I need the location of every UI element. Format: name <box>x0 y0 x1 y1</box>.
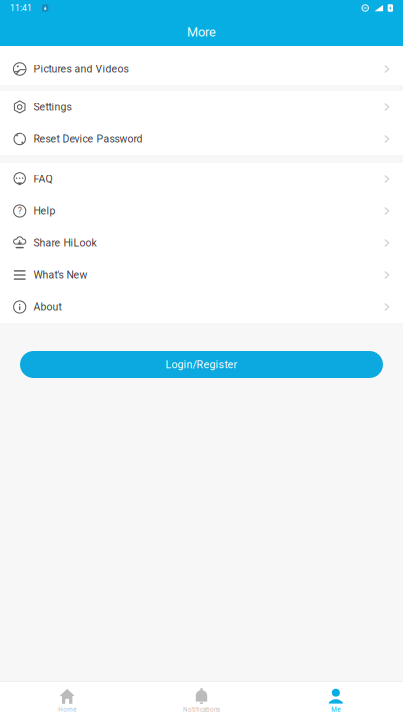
button[interactable]: Login/Register <box>20 351 383 378</box>
button[interactable]: Reset Device Password <box>0 123 403 155</box>
staticText: ? <box>18 206 22 216</box>
staticText: Notifications <box>183 706 220 713</box>
button[interactable]: Notifications <box>134 682 269 718</box>
staticText: About <box>34 301 62 313</box>
staticText: What's New <box>34 269 88 281</box>
button[interactable]: Settings <box>0 91 403 123</box>
staticText: More <box>187 24 216 39</box>
button[interactable]: What's New <box>0 259 403 291</box>
staticText: Share HiLook <box>34 237 97 249</box>
staticText: Help <box>34 205 56 217</box>
button[interactable]: ? <box>0 195 403 227</box>
button[interactable]: Share HiLook <box>0 227 403 259</box>
staticText: Reset Device Password <box>34 133 143 145</box>
button[interactable]: Pictures and Videos <box>0 53 403 85</box>
staticText: Me <box>331 706 340 713</box>
button[interactable]: Me <box>269 682 403 718</box>
staticText: Pictures and Videos <box>34 63 129 75</box>
button[interactable]: FAQ <box>0 163 403 195</box>
staticText: Settings <box>34 101 72 113</box>
button[interactable]: About <box>0 291 403 323</box>
button[interactable]: Home <box>0 682 134 718</box>
staticText: FAQ <box>34 173 53 185</box>
staticText: Home <box>58 706 76 713</box>
staticText: 11:41 <box>10 3 32 13</box>
staticText: Login/Register <box>165 358 237 371</box>
